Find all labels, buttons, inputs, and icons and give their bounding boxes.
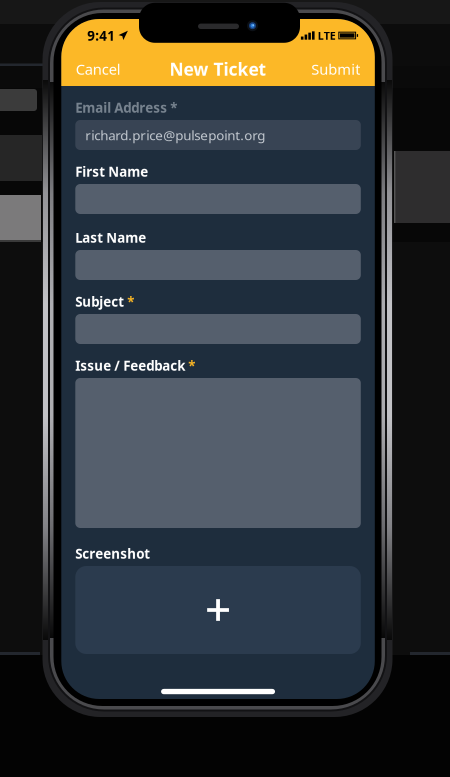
staticText: LTE (318, 28, 336, 43)
staticText: Screenshot (75, 545, 150, 562)
staticText: Email Address (75, 99, 167, 116)
staticText: 9:41 (87, 27, 115, 44)
staticText: Subject (75, 293, 124, 310)
staticText: New Ticket (170, 57, 267, 80)
staticText: * (127, 293, 134, 310)
staticText: Last Name (75, 229, 146, 246)
staticText: First Name (75, 163, 148, 180)
staticText: Submit (311, 59, 360, 79)
staticText: * (188, 357, 195, 374)
staticText: Cancel (76, 59, 121, 79)
button[interactable]: Submit (311, 51, 361, 87)
staticText: Issue / Feedback (75, 357, 185, 374)
staticText: richard.price@pulsepoint.org (85, 126, 265, 144)
button[interactable]: Cancel (75, 51, 121, 87)
staticText: * (170, 99, 177, 116)
button[interactable]: Add screenshot (75, 566, 361, 654)
